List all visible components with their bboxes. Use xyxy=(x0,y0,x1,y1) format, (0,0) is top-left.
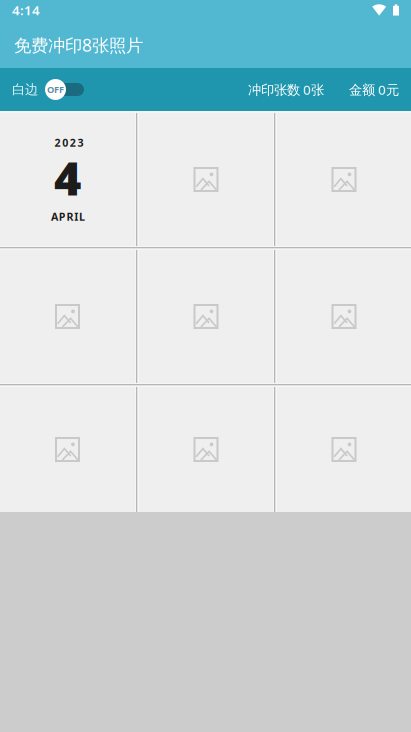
staticText: 3 xyxy=(77,135,83,150)
staticText: A xyxy=(51,209,58,224)
staticText: 2 xyxy=(70,135,76,150)
staticText: OFF xyxy=(47,83,64,96)
staticText: 冲印张数 0张 xyxy=(248,81,324,98)
button[interactable]: Photo slot xyxy=(277,113,411,246)
staticText: I xyxy=(74,209,78,224)
button[interactable]: Photo slot xyxy=(139,250,273,383)
staticText: 免费冲印8张照片 xyxy=(14,33,143,56)
staticText: 0 xyxy=(62,135,68,150)
button[interactable]: April 2023 xyxy=(0,113,135,246)
button[interactable]: Photo slot xyxy=(139,387,273,512)
button[interactable]: Photo slot xyxy=(0,250,135,383)
button[interactable]: Photo slot xyxy=(277,387,411,512)
button[interactable]: Photo slot xyxy=(0,387,135,512)
staticText: L xyxy=(79,209,85,224)
staticText: R xyxy=(66,209,73,224)
staticText: 2 xyxy=(55,135,61,150)
staticText: P xyxy=(59,209,66,224)
staticText: 4 xyxy=(54,146,81,208)
staticText: 4:14 xyxy=(12,1,40,19)
button[interactable]: White border, off xyxy=(45,79,84,100)
staticText: 白边 xyxy=(12,81,38,98)
button[interactable]: Photo slot xyxy=(277,250,411,383)
button[interactable]: Photo slot xyxy=(139,113,273,246)
staticText: 金额 0元 xyxy=(349,81,399,98)
